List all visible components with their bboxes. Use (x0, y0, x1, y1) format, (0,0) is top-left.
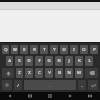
other: Shift (6, 71, 11, 76)
staticText: V (48, 70, 51, 76)
staticText: X (28, 70, 31, 76)
staticText: E (23, 47, 26, 53)
button[interactable]: Home (20, 92, 40, 100)
button[interactable]: D (25, 56, 33, 66)
button[interactable]: K (75, 56, 83, 66)
button[interactable]: W (11, 45, 18, 54)
button[interactable]: Keyboard (80, 92, 100, 100)
button[interactable]: X (25, 68, 33, 78)
button[interactable]: R (30, 45, 38, 54)
button[interactable]: . (78, 80, 86, 90)
staticText: P (93, 47, 96, 53)
button[interactable]: Enter (88, 80, 98, 90)
staticText: N (67, 70, 71, 76)
other: Symbols (5, 83, 9, 87)
other: Backspace (89, 70, 95, 76)
button[interactable]: Symbols (2, 80, 12, 90)
button[interactable]: Z (16, 68, 23, 78)
button[interactable]: Recents (40, 92, 60, 100)
button[interactable]: I (70, 45, 78, 54)
button[interactable]: U (60, 45, 68, 54)
staticText: M (77, 70, 81, 76)
button[interactable]: M (75, 68, 83, 78)
staticText: D (27, 58, 31, 64)
button[interactable]: A (6, 56, 13, 66)
other: Enter (91, 83, 96, 88)
button[interactable]: T (40, 45, 48, 54)
staticText: H (57, 58, 61, 64)
button[interactable]: O (80, 45, 88, 54)
staticText: K (78, 58, 81, 64)
button[interactable]: Back (0, 92, 20, 100)
button[interactable]: L (85, 56, 93, 66)
staticText: L (88, 58, 91, 64)
staticText: W (13, 47, 17, 53)
button[interactable]: P (90, 45, 98, 54)
staticText: I (73, 47, 75, 53)
staticText: B (58, 70, 61, 76)
button[interactable]: V (45, 68, 53, 78)
button[interactable]: Menu (60, 92, 80, 100)
staticText: T (43, 47, 46, 53)
staticText: C (38, 70, 41, 76)
button[interactable]: Shift (2, 68, 14, 78)
button[interactable]: F (35, 56, 43, 66)
button[interactable]: G (45, 56, 53, 66)
button[interactable]: J (65, 56, 73, 66)
button[interactable]: Q (2, 45, 9, 54)
staticText: S (18, 58, 21, 64)
staticText: J (68, 58, 70, 64)
staticText: A (8, 58, 11, 64)
staticText: Y (53, 47, 56, 53)
staticText: U (62, 47, 66, 53)
button[interactable]: S (15, 56, 23, 66)
staticText: Q (4, 47, 8, 53)
staticText: R (33, 47, 36, 53)
button[interactable]: N (65, 68, 73, 78)
staticText: G (47, 58, 51, 64)
button[interactable]: B (55, 68, 63, 78)
staticText: O (82, 47, 86, 53)
button[interactable]: H (55, 56, 63, 66)
button[interactable]: / (14, 80, 22, 90)
staticText: Z (18, 70, 21, 76)
button[interactable]: Y (50, 45, 58, 54)
button[interactable]: Backspace (85, 68, 98, 78)
staticText: - - - (47, 83, 53, 88)
staticText: F (38, 58, 41, 64)
staticText: / (17, 83, 19, 88)
staticText: . (81, 83, 83, 88)
button[interactable]: E (20, 45, 28, 54)
button[interactable]: C (35, 68, 43, 78)
